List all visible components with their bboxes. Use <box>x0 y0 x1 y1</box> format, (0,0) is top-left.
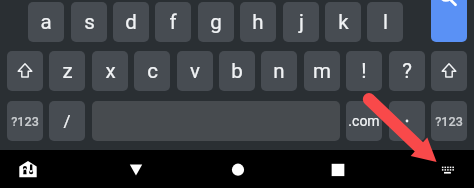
button[interactable]: Home button <box>219 150 257 188</box>
staticText: a <box>40 10 52 34</box>
button[interactable]: Shift <box>7 51 43 91</box>
button[interactable]: ? <box>389 51 425 91</box>
button[interactable]: m <box>304 51 340 91</box>
staticText: b <box>231 59 243 83</box>
button[interactable]: Recent apps <box>319 150 357 188</box>
button[interactable]: h <box>240 2 276 42</box>
staticText: l <box>383 10 388 34</box>
staticText: c <box>147 59 158 83</box>
staticText: s <box>84 10 95 34</box>
button[interactable]: / <box>49 101 85 141</box>
staticText: m <box>313 59 331 83</box>
button[interactable]: c <box>134 51 170 91</box>
staticText: h <box>252 10 264 34</box>
staticText: j <box>299 10 304 34</box>
button[interactable]: k <box>325 2 361 42</box>
button[interactable]: ?123 <box>7 101 43 141</box>
button[interactable]: Period <box>389 101 425 141</box>
button[interactable]: d <box>113 2 149 42</box>
button[interactable]: Hide keyboard <box>117 150 155 188</box>
staticText: x <box>105 59 116 83</box>
staticText: z <box>62 59 73 83</box>
staticText: ? <box>402 59 412 83</box>
button[interactable]: g <box>198 2 234 42</box>
button[interactable]: a <box>28 2 64 42</box>
button[interactable]: l <box>367 2 403 42</box>
button[interactable]: Switch keyboard <box>429 150 467 188</box>
button[interactable]: x <box>92 51 128 91</box>
button[interactable]: ?123 <box>431 101 467 141</box>
button[interactable]: Search <box>431 0 467 42</box>
staticText: ?123 <box>435 114 463 129</box>
button[interactable]: f <box>155 2 191 42</box>
button[interactable]: ! <box>346 51 382 91</box>
button[interactable]: .com <box>346 101 382 141</box>
button[interactable]: n <box>261 51 297 91</box>
staticText: / <box>63 111 71 131</box>
staticText: n <box>273 59 285 83</box>
button[interactable]: Home <box>9 150 47 188</box>
button[interactable]: v <box>177 51 213 91</box>
staticText: ?123 <box>11 114 39 129</box>
button[interactable]: s <box>71 2 107 42</box>
staticText: .com <box>348 113 380 129</box>
button[interactable]: z <box>49 51 85 91</box>
staticText: d <box>125 10 137 34</box>
staticText: k <box>338 10 349 34</box>
staticText: f <box>169 10 177 34</box>
button[interactable]: b <box>219 51 255 91</box>
staticText: ! <box>361 59 367 83</box>
staticText: g <box>210 10 222 34</box>
button[interactable]: Shift <box>431 51 467 91</box>
button[interactable]: j <box>283 2 319 42</box>
staticText: v <box>190 59 200 83</box>
